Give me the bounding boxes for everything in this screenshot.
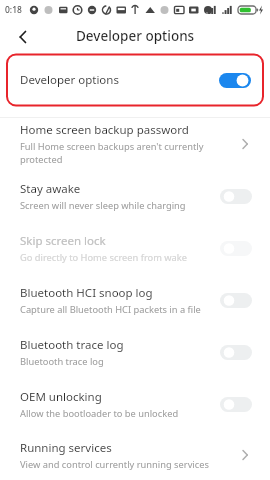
staticText: OEM unlocking bbox=[20, 389, 102, 405]
staticText: Allow the bootloader to be unlocked bbox=[20, 407, 179, 420]
staticText: Skip screen lock bbox=[20, 233, 106, 249]
staticText: Bluetooth trace log bbox=[20, 337, 124, 353]
staticText: 0:18 bbox=[5, 4, 22, 16]
staticText: Bluetooth trace log bbox=[20, 355, 104, 368]
staticText: Running services bbox=[20, 440, 112, 456]
button[interactable]: Bluetooth HCI snoop log bbox=[0, 274, 270, 326]
button[interactable]: Skip screen lock bbox=[0, 222, 270, 274]
button[interactable]: OEM unlocking bbox=[0, 378, 270, 430]
staticText: Screen will never sleep while charging bbox=[20, 199, 186, 212]
button[interactable]: Bluetooth trace log bbox=[0, 326, 270, 378]
button[interactable]: Home screen backup password bbox=[0, 118, 270, 170]
staticText: View and control currently running servi… bbox=[20, 458, 209, 471]
staticText: Full Home screen backups aren't currentl… bbox=[20, 140, 230, 166]
staticText: Developer options bbox=[20, 72, 219, 88]
button[interactable]: Developer options bbox=[20, 53, 251, 107]
button[interactable]: Running services bbox=[0, 430, 270, 480]
button[interactable]: Back bbox=[0, 20, 44, 53]
button[interactable]: Stay awake bbox=[0, 170, 270, 222]
staticText: Go directly to Home screen from wake bbox=[20, 251, 187, 264]
staticText: Stay awake bbox=[20, 181, 81, 197]
staticText: Capture all Bluetooth HCI packets in a f… bbox=[20, 303, 201, 316]
staticText: Bluetooth HCI snoop log bbox=[20, 285, 153, 301]
staticText: Developer options bbox=[76, 27, 195, 45]
staticText: Home screen backup password bbox=[20, 122, 189, 138]
